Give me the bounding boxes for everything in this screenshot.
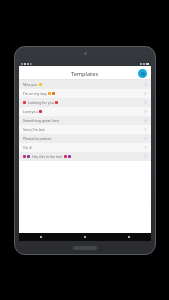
button[interactable]: Looking for you [19,98,151,107]
button[interactable]: Please be patient [19,134,151,143]
staticText: Love you [23,109,38,114]
staticText: Miss you [23,82,38,87]
button[interactable]: Miss you [19,80,151,89]
staticText: Hey this is the text [32,154,63,159]
button[interactable]: Add template [138,69,147,78]
button[interactable]: Love you [19,107,151,116]
button[interactable]: Back [19,233,63,241]
button[interactable]: Sorry I'm late [19,125,151,134]
staticText: Please be patient [23,136,52,141]
button[interactable]: Recents [107,233,151,241]
button[interactable]: Home [63,233,107,241]
staticText: Something great here [23,118,59,123]
staticText: Sorry I'm late [23,127,45,132]
staticText: Looking for you [28,100,54,105]
button[interactable]: On it! [19,143,151,152]
staticText: Templates [71,70,99,77]
button[interactable]: Hey this is the text [19,152,151,161]
button[interactable]: Something great here [19,116,151,125]
staticText: On it! [23,145,32,150]
button[interactable]: I'm on my way [19,89,151,98]
staticText: I'm on my way [23,91,47,96]
